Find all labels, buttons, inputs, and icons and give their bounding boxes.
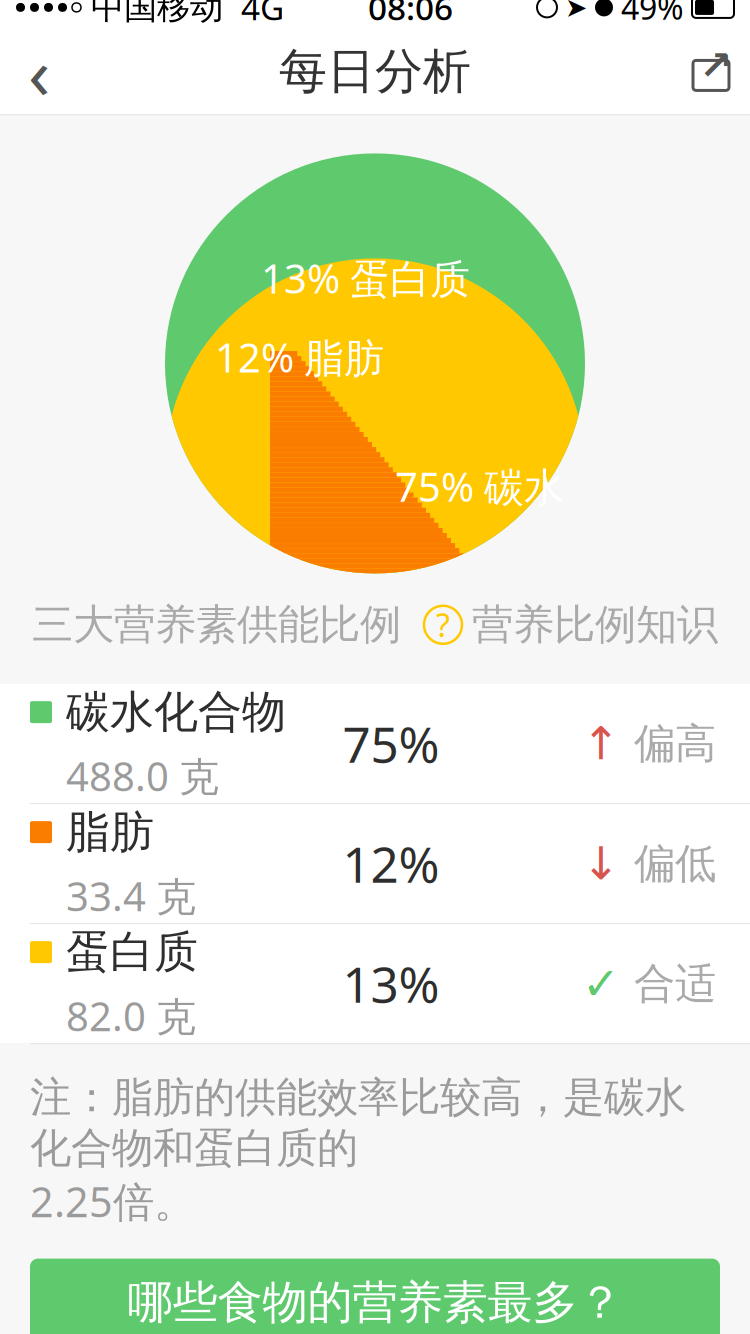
staticText: 4G xyxy=(223,0,284,30)
staticText: 哪些食物的营养素最多？ xyxy=(127,1275,622,1330)
staticText: ✓ xyxy=(582,958,620,1009)
staticText: ↗ xyxy=(699,43,733,88)
staticText: 12% xyxy=(342,831,439,896)
staticText: 偏高 xyxy=(634,718,716,769)
button[interactable]: Share xyxy=(672,27,750,115)
staticText: 偏低 xyxy=(634,838,716,889)
button[interactable]: Back xyxy=(0,27,78,115)
button[interactable]: ? xyxy=(424,599,718,650)
staticText: 75% xyxy=(342,711,439,776)
staticText: 33.4 克 xyxy=(66,869,196,922)
staticText: 488.0 克 xyxy=(66,749,219,802)
staticText: 13% xyxy=(342,951,439,1016)
staticText: 82.0 克 xyxy=(66,989,196,1042)
button[interactable]: 蛋白质 xyxy=(0,924,750,1043)
staticText: 13% 蛋白质 xyxy=(261,251,470,304)
staticText: 注：脂肪的供能效率比较高，是碳水化合物和蛋白质的 2.25倍。 xyxy=(30,1072,686,1229)
staticText: ↑ xyxy=(582,718,620,769)
staticText: 脂肪 xyxy=(66,805,154,859)
staticText: 碳水化合物 xyxy=(66,685,286,739)
button[interactable]: 碳水化合物 xyxy=(0,684,750,804)
button[interactable]: 哪些食物的营养素最多？ xyxy=(30,1259,720,1334)
staticText: ‹ xyxy=(28,24,50,119)
staticText: 三大营养素供能比例 xyxy=(32,599,401,650)
staticText: ➤ xyxy=(565,0,587,23)
staticText: 12% 脂肪 xyxy=(215,330,384,384)
staticText: ? xyxy=(436,603,450,646)
staticText: 营养比例知识 xyxy=(472,599,718,650)
staticText: ↓ xyxy=(582,838,620,889)
staticText: 蛋白质 xyxy=(66,925,198,979)
staticText: 中国移动 xyxy=(81,0,223,28)
staticText: 合适 xyxy=(634,958,716,1009)
staticText: 75% 碳水 xyxy=(395,460,564,513)
button[interactable]: 脂肪 xyxy=(0,804,750,924)
staticText: 每日分析 xyxy=(279,42,471,101)
staticText: 49% xyxy=(621,0,684,29)
staticText: 08:06 xyxy=(368,0,453,30)
